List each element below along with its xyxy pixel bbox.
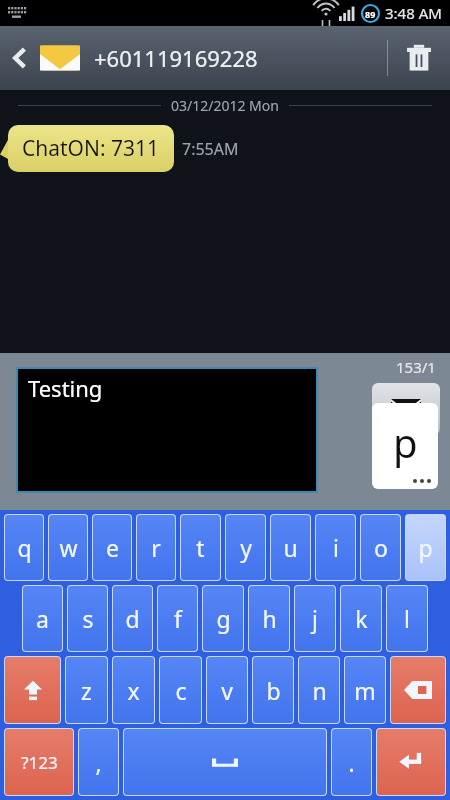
staticText: p (393, 415, 418, 469)
button[interactable]: Shift (5, 657, 60, 723)
button[interactable]: z (66, 657, 107, 723)
staticText: Testing (28, 373, 103, 403)
staticText: f (174, 603, 182, 634)
staticText: , (95, 747, 102, 778)
button[interactable]: a (23, 586, 62, 651)
staticText: i (333, 532, 339, 563)
staticText: 03/12/2012 Mon (171, 96, 279, 115)
button[interactable]: v (207, 657, 247, 723)
button[interactable]: h (249, 586, 289, 651)
staticText: 7:55AM (182, 138, 239, 160)
button[interactable]: Testing (18, 369, 316, 491)
staticText: t (196, 532, 205, 563)
button[interactable]: t (181, 515, 220, 580)
button[interactable]: q (5, 515, 43, 580)
button[interactable]: f (158, 586, 197, 651)
button[interactable]: ChatON: 7311 (8, 125, 174, 172)
staticText: n (312, 675, 327, 706)
staticText: v (221, 675, 233, 706)
button[interactable]: m (345, 657, 385, 723)
staticText: a (36, 603, 49, 634)
button[interactable]: u (271, 515, 310, 580)
button[interactable]: y (226, 515, 265, 580)
button[interactable]: Send message (372, 383, 440, 435)
button[interactable]: Space (124, 729, 326, 795)
button[interactable]: w (49, 515, 87, 580)
button[interactable]: c (160, 657, 201, 723)
staticText: z (81, 675, 92, 706)
staticText: q (17, 532, 32, 563)
button[interactable]: i (316, 515, 355, 580)
button[interactable]: . (332, 729, 371, 795)
staticText: h (262, 603, 277, 634)
staticText: w (59, 532, 78, 563)
staticText: 3:48 AM (385, 3, 442, 23)
button[interactable]: Delete (391, 657, 445, 723)
staticText: s (82, 603, 94, 634)
button[interactable]: , (79, 729, 118, 795)
button[interactable]: o (361, 515, 400, 580)
staticText: x (127, 675, 140, 706)
other: Back (10, 44, 30, 72)
staticText: b (266, 675, 281, 706)
button[interactable]: ?123 (5, 729, 73, 795)
button[interactable]: x (113, 657, 154, 723)
staticText: ChatON: 7311 (22, 134, 160, 163)
button[interactable]: r (137, 515, 175, 580)
button[interactable]: b (253, 657, 293, 723)
button[interactable]: p (406, 515, 445, 580)
button[interactable]: s (68, 586, 107, 651)
staticText: p (418, 532, 433, 563)
staticText: y (240, 532, 252, 563)
staticText: r (151, 532, 161, 563)
button[interactable]: g (203, 586, 243, 651)
staticText: +601119169228 (94, 43, 258, 73)
staticText: d (125, 603, 140, 634)
button[interactable]: Delete (388, 26, 450, 90)
button[interactable]: l (387, 586, 427, 651)
button[interactable]: n (299, 657, 339, 723)
button[interactable]: k (341, 586, 381, 651)
button[interactable]: d (113, 586, 152, 651)
staticText: ?123 (21, 751, 58, 774)
staticText: 89 (365, 8, 376, 20)
staticText: k (355, 603, 368, 634)
staticText: . (348, 747, 355, 778)
staticText: o (374, 532, 388, 563)
button[interactable]: Back (0, 26, 86, 90)
button[interactable]: Enter (377, 729, 445, 795)
button[interactable]: j (295, 586, 335, 651)
staticText: l (404, 603, 410, 634)
staticText: m (354, 675, 376, 706)
staticText: g (216, 603, 231, 634)
button[interactable]: e (93, 515, 131, 580)
staticText: e (106, 532, 119, 563)
staticText: u (283, 532, 298, 563)
staticText: c (175, 675, 187, 706)
staticText: j (312, 603, 318, 634)
staticText: 153/1 (396, 357, 436, 377)
